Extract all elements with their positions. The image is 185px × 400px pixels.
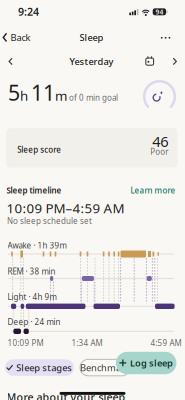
button[interactable] <box>144 55 155 66</box>
staticText: 4:59 AM <box>150 338 181 348</box>
staticText: Benchmark <box>80 361 130 374</box>
staticText: 10:09 PM <box>7 338 43 348</box>
staticText: 94 <box>155 7 163 16</box>
staticText: 46 <box>152 131 168 151</box>
staticText: Poor <box>150 146 168 157</box>
button[interactable]: Sleep score <box>6 128 177 168</box>
staticText: Sleep <box>79 31 103 44</box>
staticText: 10:09 PM–4:59 AM <box>6 199 124 217</box>
staticText: of 0 min goal <box>67 92 118 103</box>
button[interactable]: Back <box>3 31 30 44</box>
staticText: Sleep score <box>17 144 61 155</box>
staticText: More about your sleep <box>6 390 125 400</box>
staticText: 11 <box>31 78 55 107</box>
staticText: Light · 4h 9m <box>7 292 56 302</box>
staticText: h <box>20 87 31 104</box>
staticText: Yesterday <box>69 55 113 67</box>
button[interactable]: Learn more <box>115 183 175 197</box>
button[interactable]: Benchmark <box>80 359 130 376</box>
staticText: 9:24 <box>18 4 39 19</box>
staticText: Deep · 24 min <box>7 317 60 327</box>
button[interactable] <box>169 57 178 66</box>
staticText: Sleep stages <box>16 361 72 374</box>
button[interactable] <box>141 78 177 114</box>
staticText: REM · 38 min <box>7 266 55 277</box>
button[interactable] <box>157 31 175 45</box>
staticText: No sleep schedule set <box>7 215 92 226</box>
staticText: 5 <box>8 78 20 107</box>
staticText: m <box>55 87 67 104</box>
button[interactable]: Sleep stages <box>5 359 74 376</box>
staticText: Log sleep <box>130 357 173 369</box>
button[interactable] <box>8 57 17 66</box>
button[interactable]: Log sleep <box>116 352 176 374</box>
staticText: 1:34 AM <box>71 338 102 348</box>
staticText: Awake · 1h 39m <box>7 240 66 251</box>
staticText: Sleep timeline <box>6 185 61 196</box>
staticText: Learn more <box>130 185 175 196</box>
staticText: Back <box>10 31 30 44</box>
